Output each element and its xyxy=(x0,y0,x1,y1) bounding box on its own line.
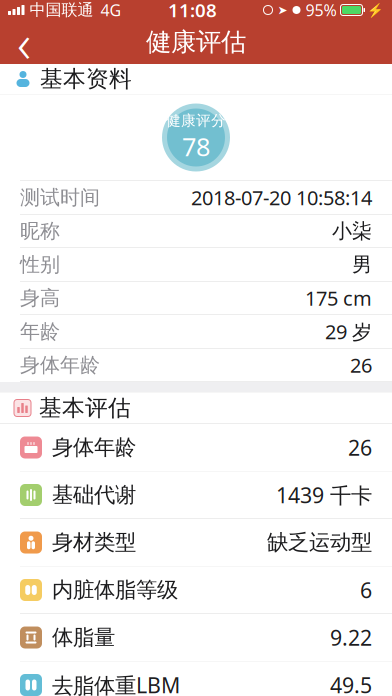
staticText: 体脂量 xyxy=(52,624,115,651)
button[interactable]: 身材类型 xyxy=(0,519,392,566)
button[interactable]: 体脂量 xyxy=(0,614,392,661)
staticText: 昵称 xyxy=(20,219,60,243)
staticText: 基本评估 xyxy=(39,394,131,422)
staticText: 基本资料 xyxy=(40,65,132,93)
staticText: 29 岁 xyxy=(325,318,372,345)
staticText: 11:08 xyxy=(168,0,217,22)
staticText: ‹ xyxy=(17,7,31,77)
staticText: 基础代谢 xyxy=(52,482,136,508)
staticText: 健康评估 xyxy=(146,26,246,57)
button[interactable]: 身体年龄 xyxy=(0,424,392,471)
staticText: 4G xyxy=(100,0,121,21)
staticText: ➤ xyxy=(277,3,287,17)
staticText: 健康评分 xyxy=(166,112,226,130)
staticText: 26 xyxy=(350,352,372,378)
staticText: ⚡ xyxy=(367,2,384,18)
staticText: 去脂体重LBM xyxy=(52,671,180,696)
staticText: 小柒 xyxy=(332,219,372,243)
staticText: 男 xyxy=(352,252,372,277)
staticText: 2018-07-20 10:58:14 xyxy=(191,184,372,211)
staticText: 6 xyxy=(360,576,372,604)
button[interactable]: 内脏体脂等级 xyxy=(0,566,392,614)
staticText: 95% xyxy=(305,0,336,21)
staticText: 身体年龄 xyxy=(20,353,100,377)
staticText: 中国联通 xyxy=(29,0,93,20)
staticText: 175 cm xyxy=(305,285,372,311)
button[interactable]: 基础代谢 xyxy=(0,471,392,519)
staticText: 身高 xyxy=(20,286,60,310)
staticText: 缺乏运动型 xyxy=(267,529,372,556)
staticText: 身体年龄 xyxy=(52,434,136,461)
button[interactable]: 去脂体重LBM xyxy=(0,661,392,696)
staticText: 49.5 xyxy=(330,671,372,696)
staticText: 78 xyxy=(182,130,210,163)
staticText: 身材类型 xyxy=(52,529,136,556)
staticText: 测试时间 xyxy=(20,185,100,210)
staticText: 年龄 xyxy=(20,319,60,344)
staticText: 内脏体脂等级 xyxy=(52,577,178,603)
button[interactable]: 返回 xyxy=(0,20,48,64)
staticText: 1439 千卡 xyxy=(276,481,372,509)
staticText: 9.22 xyxy=(330,623,372,652)
staticText: 26 xyxy=(348,433,372,462)
staticText: 性别 xyxy=(20,252,60,277)
